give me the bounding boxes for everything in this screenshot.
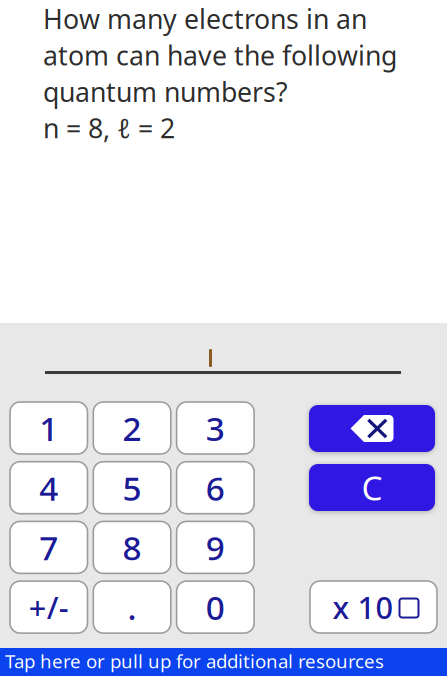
staticText: How many electrons in an	[43, 1, 367, 36]
staticText: +/-	[29, 587, 69, 627]
staticText: 9	[206, 525, 225, 570]
staticText: 4	[39, 466, 58, 510]
button[interactable]: 2	[93, 402, 171, 454]
button[interactable]: Clear	[309, 464, 435, 511]
button[interactable]: 5	[93, 462, 171, 514]
button[interactable]: Times ten to the power	[310, 581, 437, 633]
staticText: n = 8, ℓ = 2	[43, 110, 175, 146]
button[interactable]: +/-	[10, 581, 87, 633]
button[interactable]: Tap here or pull up for additional resou…	[0, 648, 447, 676]
button[interactable]: 8	[93, 521, 171, 573]
button[interactable]: .	[93, 581, 171, 633]
staticText: 1	[39, 406, 58, 450]
staticText: 3	[206, 406, 225, 450]
staticText: C	[361, 465, 382, 510]
button[interactable]: 0	[177, 581, 254, 633]
button[interactable]: 3	[177, 402, 254, 454]
staticText: 7	[39, 525, 58, 570]
button[interactable]: 4	[10, 462, 87, 514]
staticText: .	[127, 585, 136, 629]
staticText: 6	[206, 466, 225, 510]
staticText: 2	[122, 406, 141, 450]
button[interactable]: 1	[10, 402, 87, 454]
staticText: atom can have the following	[43, 37, 397, 73]
button[interactable]: Backspace	[309, 405, 435, 452]
button[interactable]: 6	[177, 462, 254, 514]
staticText: Tap here or pull up for additional resou…	[5, 649, 384, 673]
staticText: 5	[122, 466, 141, 510]
staticText: quantum numbers?	[43, 74, 288, 109]
staticText: 8	[122, 525, 141, 570]
staticText: 0	[206, 585, 225, 629]
button[interactable]: 9	[177, 521, 254, 573]
staticText: x 10	[332, 587, 393, 627]
button[interactable]: 7	[10, 521, 87, 573]
